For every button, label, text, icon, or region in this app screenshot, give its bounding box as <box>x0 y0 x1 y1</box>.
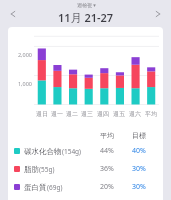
staticText: 週四 <box>97 110 109 118</box>
staticText: 11月 21-27 <box>58 10 114 25</box>
staticText: 週五 <box>113 110 125 118</box>
staticText: 週檢視 ▾ <box>77 2 96 9</box>
staticText: 平均 <box>91 131 123 140</box>
staticText: 碳水化合物 <box>24 147 62 156</box>
staticText: 40% <box>123 146 155 156</box>
staticText: 36% <box>91 164 123 174</box>
staticText: (55g) <box>39 165 55 174</box>
staticText: 目標 <box>123 131 155 140</box>
staticText: 20% <box>91 182 123 192</box>
staticText: (154g) <box>62 147 82 156</box>
staticText: 44% <box>91 146 123 156</box>
staticText: 30% <box>123 164 155 174</box>
staticText: 週日 <box>36 110 48 118</box>
staticText: 脂肪 <box>24 165 39 174</box>
staticText: 30% <box>123 182 155 192</box>
staticText: 週六 <box>129 110 141 118</box>
staticText: 週一 <box>51 110 63 118</box>
button[interactable]: 上一週 <box>0 0 26 27</box>
staticText: (69g) <box>47 183 63 192</box>
button[interactable]: 週檢視 ▾ <box>58 2 114 25</box>
staticText: 週三 <box>81 110 93 118</box>
button[interactable]: 下一週 <box>145 0 171 27</box>
button[interactable]: 脂肪 <box>14 160 155 178</box>
staticText: 平均 <box>145 110 157 118</box>
staticText: 週二 <box>66 110 78 118</box>
staticText: 蛋白質 <box>24 183 47 192</box>
button[interactable]: 碳水化合物 <box>14 142 155 160</box>
staticText: 1,000 <box>8 80 32 87</box>
button[interactable]: 蛋白質 <box>14 178 155 196</box>
staticText: 2,000 <box>8 51 32 58</box>
